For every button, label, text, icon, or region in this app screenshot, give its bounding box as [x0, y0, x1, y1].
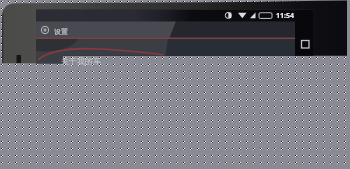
staticText: 关于我的车 [61, 56, 101, 66]
staticText: 91% [261, 12, 272, 19]
staticText: 11:54 [276, 11, 294, 21]
staticText: 设置 [54, 27, 68, 36]
